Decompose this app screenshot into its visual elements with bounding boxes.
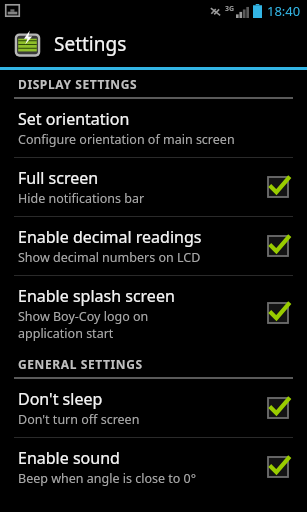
button[interactable]: Toggle setting [263,393,293,423]
staticText: Hide notifications bar [18,190,145,207]
staticText: DISPLAY SETTINGS [18,76,138,92]
button[interactable]: Toggle setting [263,298,293,328]
button[interactable]: Enable splash screen [0,276,307,350]
staticText: Don't turn off screen [18,411,140,428]
staticText: Set orientation [18,108,130,130]
button[interactable]: Don't sleep [0,379,307,437]
staticText: GENERAL SETTINGS [18,356,143,372]
button[interactable]: Enable sound [0,438,307,496]
staticText: 3G [225,4,235,14]
staticText: Don't sleep [18,388,103,410]
staticText: Show Boy-Coy logo on application start [18,308,149,341]
staticText: 18:40 [267,2,301,20]
staticText: Full screen [18,167,99,189]
staticText: Enable splash screen [18,285,175,307]
button[interactable]: Full screen [0,158,307,216]
staticText: Show decimal numbers on LCD [18,249,201,266]
button[interactable]: Toggle setting [263,452,293,482]
button[interactable]: Settings [0,21,307,67]
button[interactable]: Enable decimal readings [0,217,307,275]
staticText: Configure orientation of main screen [18,131,235,148]
button[interactable]: Toggle setting [263,231,293,261]
staticText: Enable decimal readings [18,226,202,248]
button[interactable]: Toggle setting [263,172,293,202]
staticText: Settings [54,31,127,57]
button[interactable]: Set orientation [0,99,307,157]
staticText: Enable sound [18,447,120,469]
staticText: Beep when angle is close to 0° [18,470,197,487]
